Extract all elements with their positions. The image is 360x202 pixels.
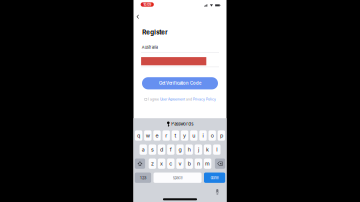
staticText: User Agreement	[160, 97, 185, 101]
button[interactable]: s	[149, 144, 156, 155]
button[interactable]: q	[135, 130, 142, 141]
button[interactable]: Shift	[135, 158, 145, 169]
staticText: s	[151, 146, 154, 153]
button[interactable]: Agree to terms	[145, 98, 147, 100]
staticText: Register	[142, 28, 167, 36]
staticText: Passwords	[171, 121, 193, 127]
staticText: y	[183, 132, 186, 139]
button[interactable]: b	[185, 158, 193, 169]
staticText: x	[160, 160, 163, 167]
staticText: Privacy Policy	[193, 97, 216, 101]
button[interactable]: y	[181, 130, 188, 141]
staticText: a	[142, 146, 145, 153]
button[interactable]: k	[204, 144, 211, 155]
button[interactable]: z	[149, 158, 156, 169]
button[interactable]: m	[204, 158, 211, 169]
staticText: j	[198, 146, 199, 153]
button[interactable]: o	[208, 130, 216, 141]
staticText: c	[169, 160, 172, 167]
button[interactable]: Dictate	[214, 187, 221, 196]
button[interactable]: j	[195, 144, 202, 155]
staticText: 10:09	[143, 2, 151, 6]
button[interactable]: Delete	[215, 158, 225, 169]
button[interactable]: Privacy Policy	[193, 97, 216, 101]
staticText: r	[165, 132, 167, 139]
staticText: h	[188, 146, 191, 153]
button[interactable]: d	[158, 144, 165, 155]
staticText: w	[146, 132, 150, 139]
staticText: u	[192, 132, 195, 139]
staticText: k	[206, 146, 209, 153]
staticText: Australia	[142, 45, 158, 50]
button[interactable]: h	[185, 144, 193, 155]
staticText: m	[205, 160, 210, 167]
button[interactable]: a	[139, 144, 147, 155]
staticText: space	[173, 175, 183, 180]
button[interactable]: User Agreement	[160, 97, 185, 101]
button[interactable]: Back	[134, 12, 142, 21]
button[interactable]: e	[153, 130, 161, 141]
button[interactable]: r	[162, 130, 170, 141]
staticText: n	[197, 160, 200, 167]
button[interactable]: done	[204, 173, 225, 183]
button[interactable]: l	[213, 144, 220, 155]
staticText: z	[151, 160, 154, 167]
button[interactable]: f	[167, 144, 174, 155]
staticText: done	[211, 175, 219, 180]
button[interactable]: p	[218, 130, 225, 141]
button[interactable]: g	[176, 144, 184, 155]
button[interactable]: v	[176, 158, 184, 169]
staticText: I agree	[148, 97, 159, 101]
button[interactable]: Passwords	[133, 118, 226, 130]
staticText: b	[188, 160, 191, 167]
staticText: t	[174, 132, 176, 139]
button[interactable]: Australia	[133, 0, 226, 202]
button[interactable]: n	[195, 158, 202, 169]
button[interactable]: c	[167, 158, 174, 169]
button[interactable]: x	[158, 158, 165, 169]
staticText: v	[178, 160, 181, 167]
staticText: q	[137, 132, 140, 139]
button[interactable]: w	[144, 130, 151, 141]
button[interactable]: space	[154, 173, 202, 183]
staticText: f	[170, 146, 172, 153]
button[interactable]: i	[199, 130, 207, 141]
staticText: o	[211, 132, 214, 139]
staticText: Get Verification Code	[159, 81, 201, 86]
staticText: g	[178, 146, 181, 153]
staticText: d	[160, 146, 163, 153]
button[interactable]: u	[190, 130, 197, 141]
button[interactable]: Get Verification Code	[142, 77, 218, 89]
staticText: 123	[140, 175, 146, 180]
staticText: p	[220, 132, 223, 139]
button[interactable]: 123	[135, 173, 151, 183]
button[interactable]: t	[172, 130, 179, 141]
staticText: l	[216, 146, 217, 153]
staticText: e	[155, 132, 158, 139]
staticText: and	[186, 97, 192, 101]
staticText: i	[202, 132, 203, 139]
